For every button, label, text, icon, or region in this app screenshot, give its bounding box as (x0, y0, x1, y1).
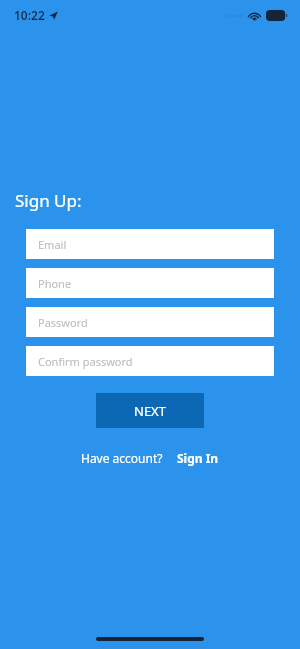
other: Home indicator (96, 637, 204, 641)
staticText: Have account? (81, 450, 163, 466)
staticText: 10:22 (14, 7, 45, 23)
staticText: Email (38, 237, 67, 252)
staticText: Phone (38, 276, 72, 291)
staticText: NEXT (134, 402, 166, 420)
button[interactable]: Phone (26, 268, 274, 298)
staticText: Confirm password (38, 354, 133, 369)
staticText: Password (38, 315, 88, 330)
staticText: Sign In (177, 450, 219, 466)
button[interactable]: Password (26, 307, 274, 337)
staticText: Sign Up: (15, 189, 82, 212)
button[interactable]: Sign In (177, 450, 219, 466)
button[interactable]: Email (26, 229, 274, 259)
button[interactable]: Confirm password (26, 346, 274, 376)
button[interactable]: NEXT (96, 393, 204, 428)
